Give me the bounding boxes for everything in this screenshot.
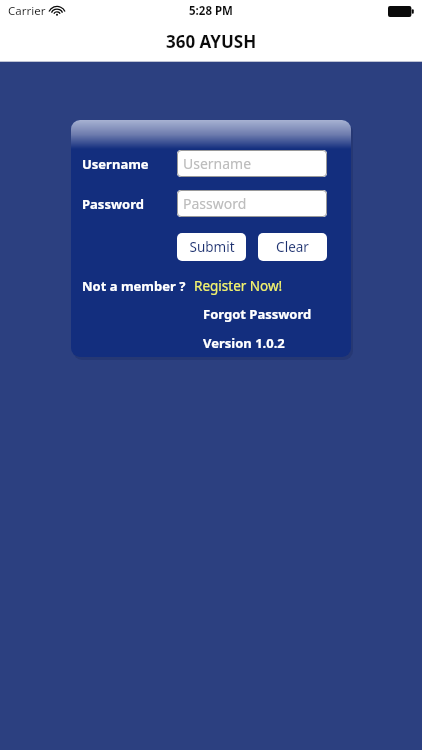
button[interactable]: Submit: [177, 233, 246, 261]
staticText: Register Now!: [194, 277, 283, 295]
staticText: Clear: [276, 238, 309, 256]
staticText: Username: [183, 154, 252, 173]
staticText: Password: [82, 195, 177, 213]
staticText: Version 1.0.2: [203, 334, 285, 352]
button[interactable]: Register Now!: [194, 277, 283, 295]
staticText: Password: [183, 194, 247, 213]
staticText: 5:28 PM: [189, 3, 233, 19]
button[interactable]: Username: [177, 150, 327, 177]
staticText: 360 AYUSH: [166, 30, 257, 53]
button[interactable]: Password: [177, 190, 327, 217]
staticText: Not a member ?: [82, 277, 186, 295]
button[interactable]: Forgot Password: [203, 305, 312, 323]
staticText: Forgot Password: [203, 305, 312, 323]
button[interactable]: Clear: [258, 233, 327, 261]
staticText: Carrier: [8, 3, 46, 19]
staticText: Username: [82, 155, 177, 173]
staticText: Submit: [189, 238, 235, 256]
